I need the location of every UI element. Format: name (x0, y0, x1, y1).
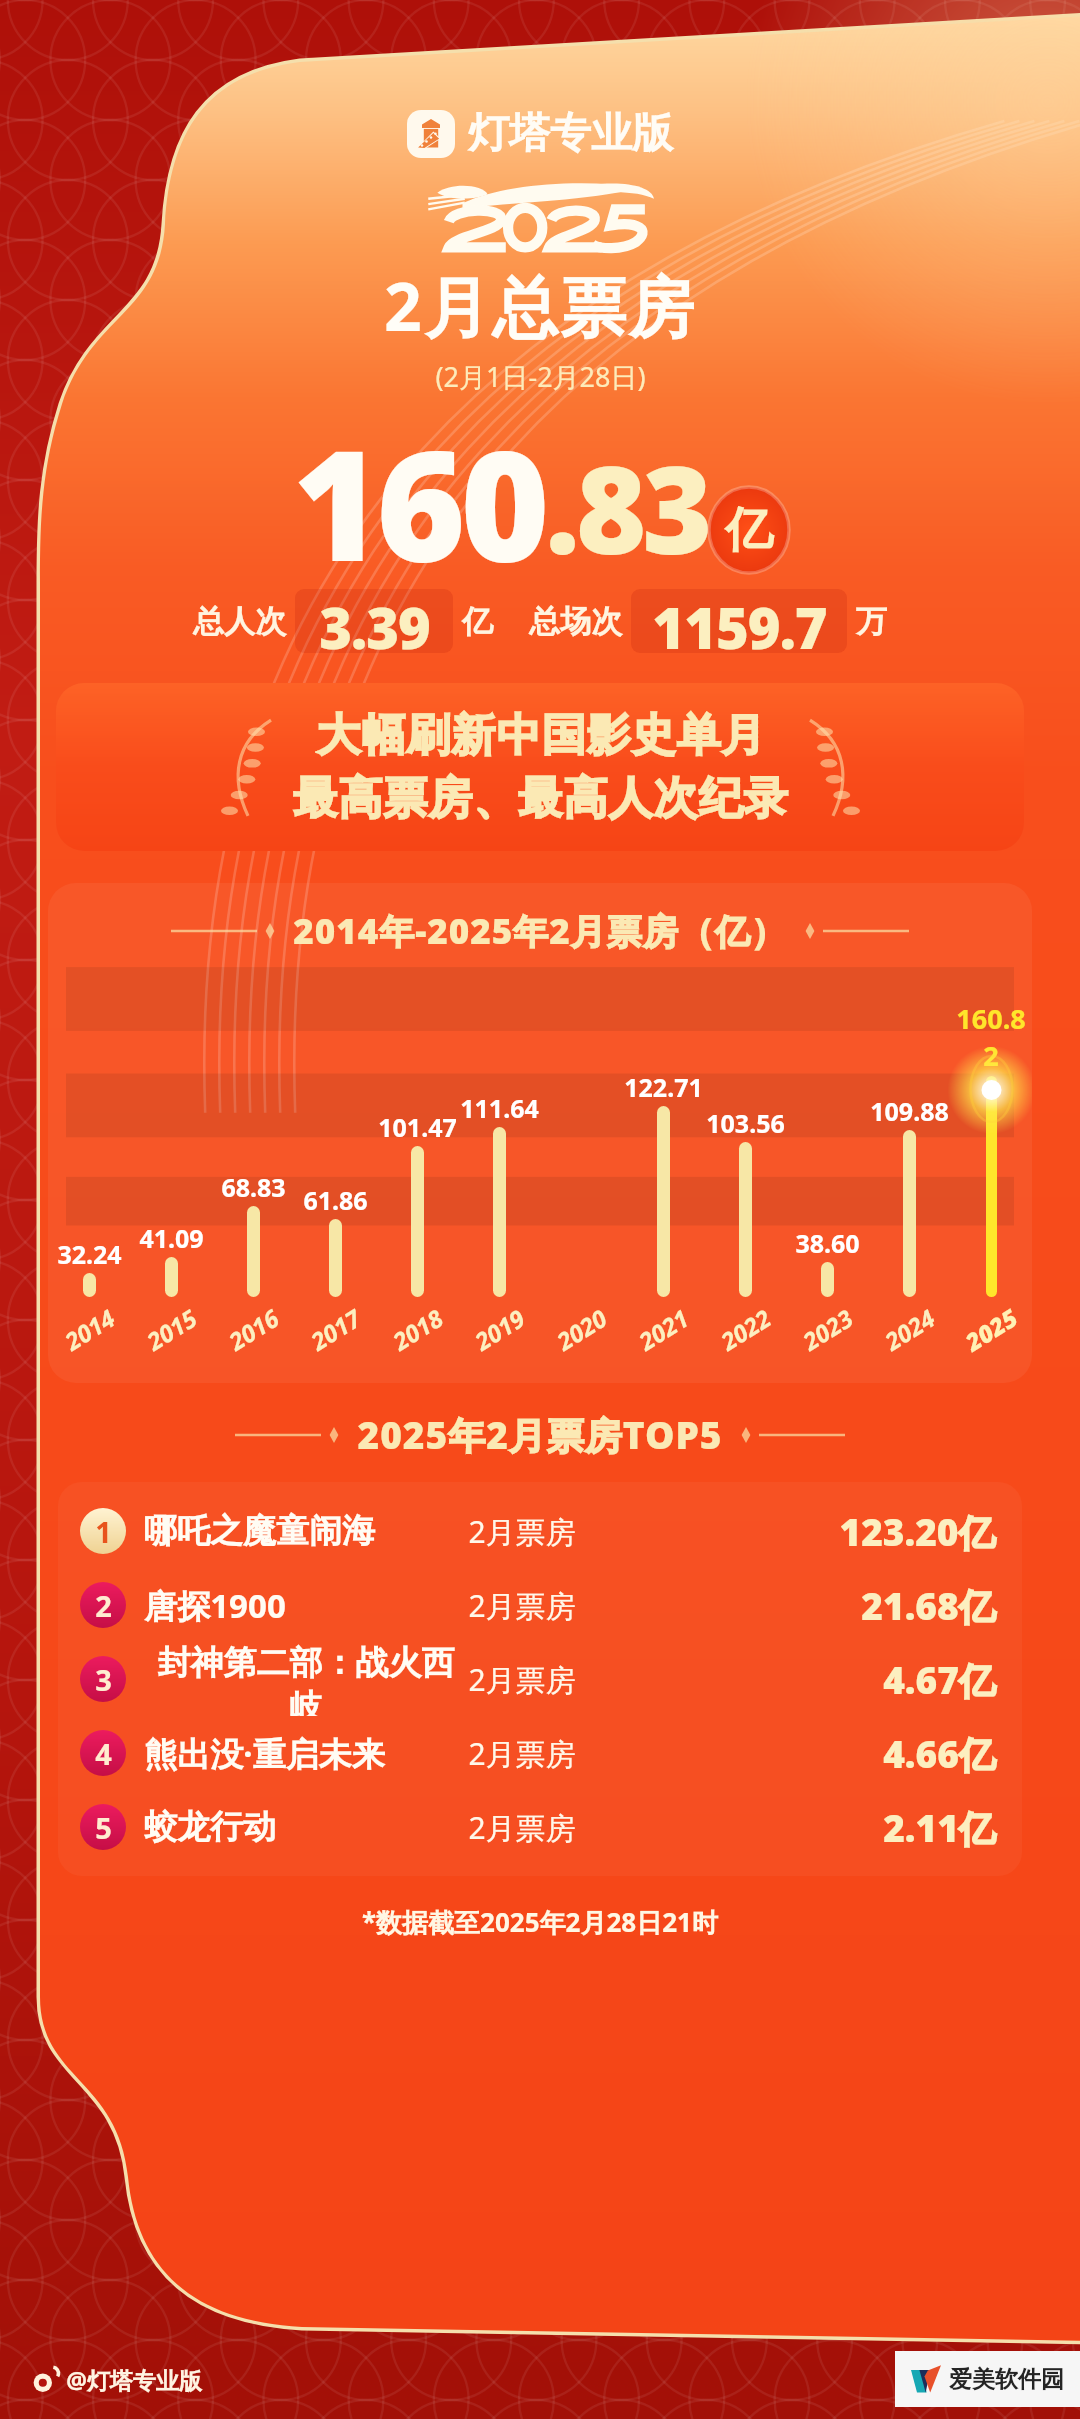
staticText: 5 (95, 1808, 112, 1847)
staticText: 111.64 (460, 1091, 539, 1125)
staticText: 4.67亿 (883, 1654, 996, 1705)
staticText: 3 (95, 1660, 112, 1699)
staticText: 2014 (58, 1301, 121, 1358)
staticText: 封神第二部：战火西岐 (144, 1642, 468, 1716)
button[interactable]: Weibo (32, 2364, 202, 2395)
staticText: 3.39 (319, 589, 430, 653)
staticText: 4.66亿 (883, 1728, 996, 1779)
staticText: 21.68亿 (861, 1580, 996, 1631)
button[interactable]: 2014年-2025年2月票房（亿） (48, 883, 1032, 1383)
staticText: 122.71 (624, 1070, 703, 1104)
button[interactable]: 3 (58, 1642, 1022, 1716)
staticText: 2.11亿 (883, 1802, 996, 1853)
staticText: 160.82 (950, 1000, 1032, 1074)
staticText: 41.09 (139, 1221, 204, 1255)
staticText: 2月总票房 (384, 260, 696, 350)
staticText: 2018 (386, 1301, 449, 1358)
staticText: 32.24 (57, 1237, 122, 1271)
button[interactable]: 大幅刷新中国影史单月 (56, 683, 1024, 851)
staticText: 68.83 (221, 1170, 286, 1204)
staticText: 103.56 (706, 1106, 785, 1140)
staticText: 亿 (462, 602, 493, 641)
staticText: 109.88 (870, 1094, 949, 1128)
button[interactable]: 5 (58, 1790, 1022, 1864)
staticText: 2024 (878, 1301, 941, 1358)
staticText: 爱美软件园 (949, 2365, 1064, 2394)
staticText: 2 (95, 1586, 112, 1625)
staticText: 总人次 (193, 602, 286, 641)
staticText: 61.86 (303, 1183, 368, 1217)
button[interactable]: 1 (58, 1494, 1022, 1568)
staticText: 总场次 (529, 602, 622, 641)
staticText: 160 (292, 399, 545, 589)
staticText: 2月票房 (468, 1659, 576, 1700)
staticText: 熊出没·重启未来 (144, 1731, 385, 1776)
staticText: 哪吒之魔童闹海 (144, 1510, 375, 1552)
staticText: 2016 (222, 1301, 285, 1358)
staticText: 1159.7 (652, 589, 827, 653)
staticText: .83 (545, 426, 709, 589)
staticText: 2月票房 (468, 1733, 576, 1774)
other: Aimei logo (911, 2364, 941, 2394)
staticText: 2022 (714, 1301, 777, 1358)
staticText: 2020 (550, 1301, 613, 1358)
staticText: @灯塔专业版 (66, 2364, 202, 2395)
staticText: 2015 (140, 1301, 203, 1358)
other: Weibo (32, 2366, 59, 2393)
staticText: 2月票房 (468, 1807, 576, 1848)
staticText: 1 (95, 1512, 112, 1551)
button[interactable]: Aimei logo (911, 2364, 1064, 2394)
button[interactable]: 灯塔专业版 (407, 108, 673, 160)
staticText: *数据截至2025年2月28日21时 (362, 1904, 718, 1940)
staticText: 2月票房 (468, 1585, 576, 1626)
staticText: 123.20亿 (839, 1506, 996, 1557)
staticText: 唐探1900 (144, 1583, 286, 1628)
staticText: 2025年2月票房TOP5 (357, 1409, 723, 1460)
staticText: 大幅刷新中国影史单月 (316, 708, 766, 763)
staticText: 2月票房 (468, 1511, 576, 1552)
staticText: 2023 (796, 1301, 859, 1358)
staticText: 38.60 (795, 1226, 860, 1260)
staticText: 2019 (468, 1301, 531, 1358)
staticText: 最高票房、最高人次纪录 (293, 771, 788, 826)
staticText: 蛟龙行动 (144, 1806, 276, 1848)
button[interactable]: 总人次 (193, 589, 493, 653)
staticText: 2021 (632, 1301, 695, 1358)
button[interactable]: 2 (58, 1568, 1022, 1642)
staticText: (2月1日-2月28日) (435, 358, 646, 395)
staticText: 2025 (958, 1301, 1023, 1358)
staticText: 亿 (725, 500, 773, 560)
staticText: 万 (856, 602, 887, 641)
staticText: 2014年-2025年2月票房（亿） (293, 907, 787, 955)
staticText: 2017 (304, 1301, 367, 1358)
staticText: 101.47 (378, 1110, 457, 1144)
staticText: 4 (95, 1734, 112, 1773)
staticText: 灯塔专业版 (468, 108, 673, 160)
button[interactable]: 4 (58, 1716, 1022, 1790)
button[interactable]: 总场次 (529, 589, 887, 653)
